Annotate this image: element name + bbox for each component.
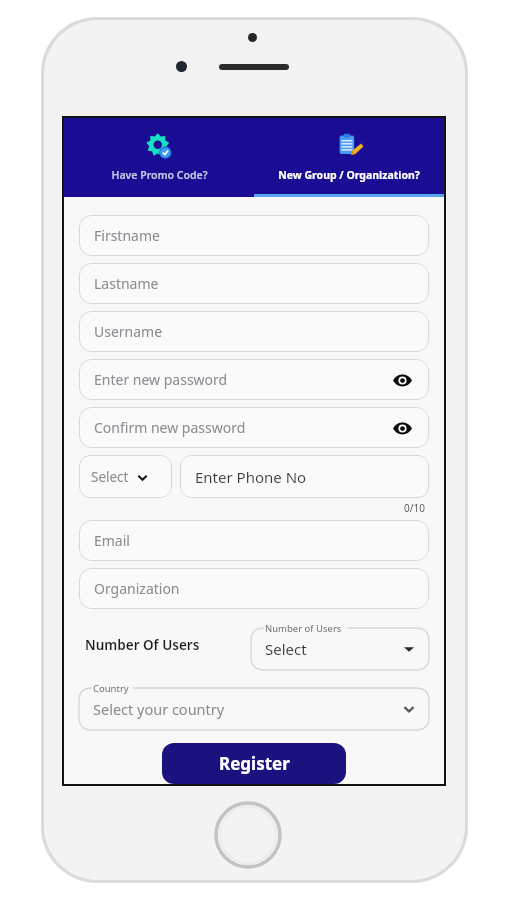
staticText: Lastname bbox=[94, 274, 159, 293]
staticText: Username bbox=[94, 322, 163, 341]
button[interactable]: Country bbox=[79, 680, 429, 730]
button[interactable]: Firstname bbox=[79, 215, 429, 256]
staticText: New Group / Organization? bbox=[278, 168, 420, 182]
staticText: Select your country bbox=[93, 699, 225, 719]
staticText: Number of Users bbox=[265, 622, 342, 635]
button[interactable]: Number of Users bbox=[251, 620, 429, 670]
button[interactable]: New Group / Organization? bbox=[254, 118, 444, 197]
staticText: Enter Phone No bbox=[195, 467, 307, 487]
staticText: 0/10 bbox=[404, 501, 425, 515]
staticText: Email bbox=[94, 531, 130, 550]
button[interactable]: Register bbox=[162, 743, 346, 784]
staticText: Firstname bbox=[94, 226, 160, 245]
staticText: Select bbox=[91, 468, 129, 486]
staticText: Country bbox=[93, 682, 129, 695]
button[interactable]: Select bbox=[79, 455, 172, 498]
button[interactable]: Have Promo Code? bbox=[64, 118, 254, 197]
button[interactable]: Lastname bbox=[79, 263, 429, 304]
button[interactable]: Toggle password visibility bbox=[390, 368, 414, 392]
staticText: Confirm new password bbox=[94, 418, 246, 437]
button[interactable]: Enter Phone No bbox=[180, 455, 429, 498]
staticText: Register bbox=[219, 752, 290, 775]
staticText: Number Of Users bbox=[85, 636, 251, 654]
button[interactable]: Toggle password visibility bbox=[390, 416, 414, 440]
staticText: Select bbox=[265, 639, 307, 659]
staticText: Have Promo Code? bbox=[111, 168, 208, 182]
button[interactable]: Username bbox=[79, 311, 429, 352]
staticText: Enter new password bbox=[94, 370, 228, 389]
staticText: Organization bbox=[94, 579, 180, 598]
button[interactable]: Organization bbox=[79, 568, 429, 609]
button[interactable]: Confirm new password bbox=[79, 407, 429, 448]
button[interactable]: Email bbox=[79, 520, 429, 561]
button[interactable]: Enter new password bbox=[79, 359, 429, 400]
